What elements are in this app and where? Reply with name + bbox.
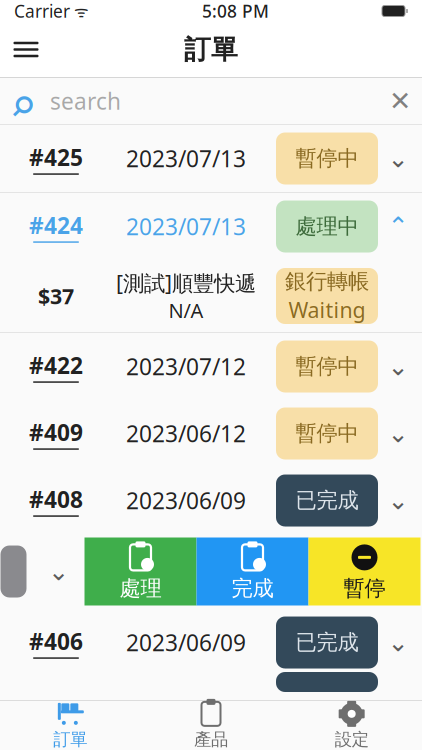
button[interactable]: 暫停 <box>308 537 420 605</box>
staticText: #406 <box>29 626 83 656</box>
staticText: 產品 <box>194 729 228 750</box>
staticText: ⌄ <box>48 557 69 586</box>
staticText: 2023/07/12 <box>126 351 246 381</box>
staticText: #409 <box>29 417 83 447</box>
staticText: #408 <box>29 484 83 514</box>
staticText: $37 <box>38 282 74 310</box>
button[interactable]: #424 <box>0 193 422 260</box>
button[interactable]: Menu <box>0 22 52 76</box>
staticText: N/A <box>168 297 203 323</box>
staticText: [測試]順豐快遞 <box>116 269 256 297</box>
staticText: ⌄ <box>387 486 408 515</box>
staticText: ⌄ <box>387 628 408 657</box>
staticText: 暫停中 <box>295 145 358 172</box>
staticText: 處理中 <box>295 213 358 240</box>
staticText: ✕ <box>389 86 411 116</box>
button[interactable]: 處理 <box>84 537 196 605</box>
staticText: 訂單 <box>53 729 87 750</box>
button[interactable]: #408 <box>0 467 422 534</box>
staticText: 完成 <box>231 575 273 602</box>
staticText: #422 <box>29 350 83 380</box>
staticText: 設定 <box>335 729 369 750</box>
staticText: 2023/06/12 <box>126 418 246 448</box>
staticText: 5:08 PM <box>202 0 269 22</box>
staticText: 2023/06/09 <box>126 485 246 515</box>
staticText: 銀行轉帳 <box>285 268 369 294</box>
button[interactable]: Clear search <box>378 78 422 124</box>
button[interactable]: #422 <box>0 333 422 400</box>
staticText: ⌄ <box>387 144 408 173</box>
staticText: ⌄ <box>387 419 408 448</box>
button[interactable]: #425 <box>0 125 422 192</box>
staticText: 已完成 <box>295 629 358 656</box>
staticText: #424 <box>29 210 83 240</box>
button[interactable]: 完成 <box>196 537 308 605</box>
staticText: 暫停中 <box>295 420 358 447</box>
button[interactable]: 產品 <box>141 701 281 750</box>
staticText: ⌃ <box>387 212 408 241</box>
staticText: search <box>50 86 121 116</box>
staticText: Carrier <box>14 0 70 22</box>
button[interactable]: 訂單 <box>0 701 141 750</box>
staticText: 處理 <box>119 575 161 602</box>
staticText: 訂單 <box>184 33 238 66</box>
button[interactable]: #409 <box>0 400 422 467</box>
staticText: 暫停 <box>343 575 385 602</box>
staticText: 2023/06/09 <box>126 627 246 657</box>
staticText: ⌕ <box>11 65 34 137</box>
staticText: Waiting <box>288 295 365 324</box>
staticText: ⌄ <box>387 352 408 381</box>
staticText: ᯤ <box>70 0 89 22</box>
button[interactable]: 設定 <box>281 701 422 750</box>
staticText: 已完成 <box>295 487 358 514</box>
staticText: #425 <box>29 142 83 172</box>
button[interactable]: #406 <box>0 609 422 676</box>
staticText: 2023/07/13 <box>126 211 246 241</box>
staticText: 2023/07/13 <box>126 143 246 173</box>
staticText: 暫停中 <box>295 353 358 380</box>
